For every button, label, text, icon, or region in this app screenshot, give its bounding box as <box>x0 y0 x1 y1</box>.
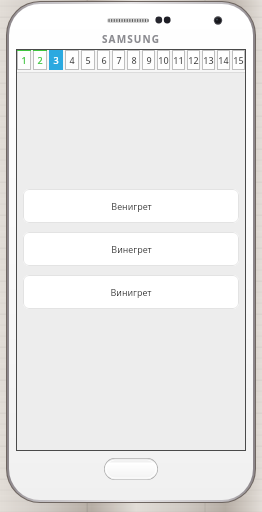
button[interactable]: 1 <box>16 49 32 72</box>
button[interactable]: 3 <box>48 49 64 72</box>
staticText: SAMSUNG <box>102 32 160 45</box>
staticText: 14 <box>218 54 229 66</box>
staticText: 7 <box>116 54 122 66</box>
staticText: 8 <box>131 54 137 66</box>
button[interactable]: Винегрет <box>23 232 239 266</box>
staticText: 10 <box>158 54 169 66</box>
button[interactable]: 5 <box>80 49 96 72</box>
button[interactable]: 13 <box>201 49 216 72</box>
button[interactable]: Венигрет <box>23 189 239 223</box>
button[interactable]: 10 <box>156 49 171 72</box>
staticText: Винегрет <box>111 243 152 255</box>
button[interactable]: Home <box>104 458 158 480</box>
staticText: Винигрет <box>110 286 152 298</box>
button[interactable]: 11 <box>171 49 186 72</box>
button[interactable]: 8 <box>126 49 141 72</box>
button[interactable]: 6 <box>96 49 111 72</box>
staticText: 9 <box>146 54 152 66</box>
button[interactable]: 9 <box>141 49 156 72</box>
staticText: 3 <box>53 54 59 66</box>
staticText: 13 <box>203 54 214 66</box>
staticText: 11 <box>173 54 184 66</box>
button[interactable]: 14 <box>216 49 231 72</box>
staticText: 1 <box>21 54 27 66</box>
staticText: 15 <box>233 54 244 66</box>
button[interactable]: 15 <box>231 49 246 72</box>
staticText: 2 <box>37 54 43 66</box>
staticText: Венигрет <box>111 200 152 212</box>
button[interactable]: 12 <box>186 49 201 72</box>
staticText: 5 <box>85 54 91 66</box>
staticText: 6 <box>101 54 107 66</box>
button[interactable]: 2 <box>32 49 48 72</box>
button[interactable]: Винигрет <box>23 275 239 309</box>
button[interactable]: 7 <box>111 49 126 72</box>
staticText: 4 <box>69 54 75 66</box>
button[interactable]: 4 <box>64 49 80 72</box>
staticText: 12 <box>188 54 199 66</box>
